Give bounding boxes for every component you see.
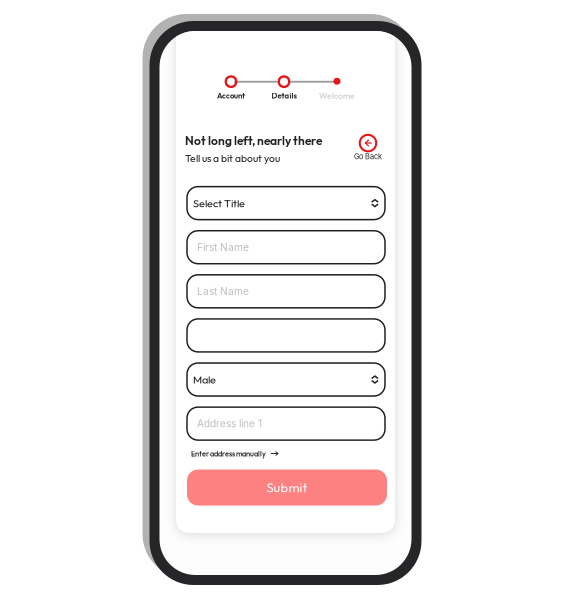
- button[interactable]: Enter address manually: [191, 447, 278, 460]
- staticText: Details: [271, 91, 296, 101]
- staticText: Welcome: [319, 90, 355, 101]
- button[interactable]: Last Name: [187, 275, 385, 308]
- staticText: Tell us a bit about you: [185, 152, 280, 165]
- button[interactable]: Male: [187, 363, 385, 396]
- staticText: Not long left, nearly there: [185, 133, 322, 148]
- staticText: Male: [193, 373, 216, 386]
- staticText: Go Back: [354, 152, 382, 161]
- staticText: First Name: [197, 241, 249, 253]
- button[interactable]: Go Back: [353, 134, 383, 161]
- staticText: Last Name: [197, 285, 249, 297]
- button[interactable]: Select Title: [187, 187, 385, 220]
- staticText: Select Title: [193, 196, 245, 210]
- staticText: Submit: [266, 479, 307, 496]
- button[interactable]: [187, 319, 385, 352]
- staticText: Account: [217, 91, 245, 101]
- button[interactable]: First Name: [187, 231, 385, 264]
- button[interactable]: Address line 1: [187, 407, 385, 440]
- staticText: Enter address manually: [191, 449, 266, 458]
- staticText: Address line 1: [197, 417, 262, 430]
- button[interactable]: Submit: [187, 469, 387, 505]
